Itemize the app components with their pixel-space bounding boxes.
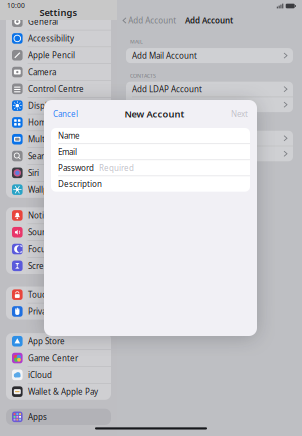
- button[interactable]: Game Center: [6, 350, 111, 367]
- staticText: Description: [58, 179, 102, 189]
- staticText: Password: [58, 162, 94, 173]
- staticText: Add Account: [128, 15, 176, 26]
- button[interactable]: Focus: [6, 241, 111, 258]
- button[interactable]: Display & Brig: [6, 97, 111, 114]
- staticText: CONTACTS: [130, 72, 156, 79]
- button[interactable]: Multitasking: [6, 131, 111, 148]
- staticText: Add LDAP Account: [132, 84, 202, 94]
- button[interactable]: Wallet & Apple Pay: [6, 383, 111, 400]
- button[interactable]: Add Subscribed Calendar: [126, 146, 293, 161]
- button[interactable]: iCloud: [6, 367, 111, 383]
- button[interactable]: Screen Time: [6, 258, 111, 274]
- button[interactable]: Home Screen: [6, 114, 111, 131]
- staticText: Touch ID & Pas: [28, 289, 85, 300]
- button[interactable]: Touch ID & Pas: [6, 286, 111, 303]
- staticText: Settings: [39, 6, 77, 19]
- button[interactable]: Apple Pencil: [6, 47, 111, 64]
- staticText: Notifications: [28, 210, 76, 221]
- staticText: MAIL: [130, 38, 143, 45]
- staticText: Sounds: [28, 227, 56, 237]
- staticText: App Store: [28, 336, 65, 346]
- staticText: iCloud: [28, 369, 52, 380]
- button[interactable]: Wallpaper: [6, 181, 111, 198]
- button[interactable]: Camera: [6, 64, 111, 81]
- staticText: Wallet & Apple Pay: [28, 386, 98, 397]
- button[interactable]: Add CardDAV Account: [126, 97, 293, 112]
- staticText: Privacy & Secu: [28, 306, 82, 317]
- staticText: Required: [99, 162, 134, 173]
- button[interactable]: Add Mail Account: [126, 48, 293, 63]
- staticText: Apps: [28, 411, 47, 422]
- staticText: Display & Brig: [28, 100, 80, 111]
- staticText: Add Account: [185, 15, 233, 26]
- button[interactable]: General: [6, 13, 111, 30]
- staticText: 10:00: [7, 1, 25, 10]
- button[interactable]: Notifications: [6, 207, 111, 224]
- staticText: New Account: [124, 108, 184, 120]
- staticText: Email: [58, 146, 77, 157]
- button[interactable]: Add CalDAV Account: [126, 131, 293, 146]
- button[interactable]: Next: [231, 109, 248, 119]
- staticText: Add CalDAV Account: [132, 133, 209, 143]
- staticText: Multitasking: [28, 134, 74, 144]
- button[interactable]: Control Centre: [6, 81, 111, 97]
- staticText: Accessibility: [28, 33, 74, 44]
- staticText: Next: [231, 109, 248, 119]
- button[interactable]: Search: [6, 148, 111, 165]
- staticText: Add Mail Account: [132, 50, 197, 61]
- staticText: Name: [58, 130, 80, 141]
- button[interactable]: Sounds: [6, 224, 111, 241]
- staticText: Wallpaper: [28, 184, 65, 195]
- button[interactable]: Privacy & Secu: [6, 303, 111, 320]
- staticText: Search: [28, 151, 53, 161]
- button[interactable]: Add Account: [117, 12, 176, 29]
- staticText: Game Center: [28, 353, 78, 363]
- staticText: Camera: [28, 67, 56, 77]
- staticText: Screen Time: [28, 260, 74, 271]
- staticText: Add CardDAV Account: [132, 99, 215, 110]
- button[interactable]: Siri: [6, 165, 111, 181]
- button[interactable]: Cancel: [53, 109, 78, 119]
- button[interactable]: Accessibility: [6, 30, 111, 47]
- button[interactable]: Apps: [6, 409, 111, 425]
- staticText: Cancel: [53, 109, 78, 119]
- staticText: Home Screen: [28, 117, 79, 128]
- staticText: Apple Pencil: [28, 50, 75, 60]
- button[interactable]: Add LDAP Account: [126, 82, 293, 97]
- button[interactable]: App Store: [6, 333, 111, 350]
- staticText: Focus: [28, 244, 50, 254]
- staticText: General: [28, 16, 58, 27]
- staticText: Control Centre: [28, 83, 84, 94]
- staticText: Siri: [28, 167, 39, 178]
